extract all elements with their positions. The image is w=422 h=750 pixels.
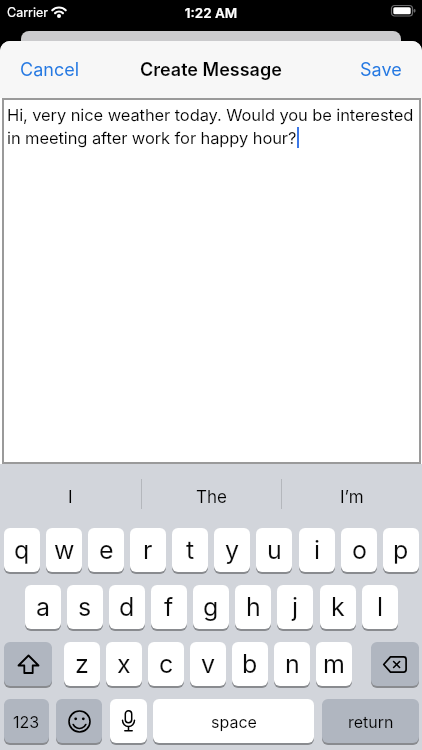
button[interactable]: Cancel [8,51,92,89]
button[interactable]: Hi, very nice weather today. Would you b… [2,98,421,464]
button[interactable]: return [322,699,419,743]
button[interactable]: e [88,528,124,572]
button[interactable]: o [341,528,377,572]
button[interactable]: The [141,473,281,522]
button[interactable]: b [232,642,268,686]
staticText: 1:22 AM [0,5,422,21]
button[interactable]: I’m [281,473,422,522]
staticText: h [246,592,261,622]
staticText: The [196,487,227,508]
button[interactable]: I [0,473,141,522]
button[interactable]: s [67,585,103,629]
button[interactable]: p [383,528,419,572]
staticText: Save [360,59,402,81]
button[interactable]: t [172,528,208,572]
staticText: d [119,592,135,622]
button[interactable]: v [190,642,226,686]
button[interactable]: l [362,585,398,629]
button[interactable]: 123 [4,699,49,743]
staticText: I [68,487,73,508]
staticText: y [225,535,240,565]
staticText: q [14,535,30,565]
staticText: s [78,592,92,622]
staticText: z [75,649,89,679]
staticText: k [331,592,345,622]
staticText: I’m [340,487,364,508]
button[interactable]: x [106,642,142,686]
staticText: n [285,649,300,679]
staticText: in meeting after work for happy hour? [7,128,297,148]
staticText: l [377,592,384,622]
staticText: x [117,649,131,679]
button[interactable]: r [130,528,166,572]
button[interactable]: q [4,528,40,572]
button[interactable]: c [148,642,184,686]
staticText: return [348,712,394,731]
staticText: p [393,535,409,565]
button[interactable]: w [46,528,82,572]
staticText: m [323,649,345,679]
button[interactable]: h [235,585,271,629]
staticText: Carrier [7,5,48,20]
staticText: b [242,649,258,679]
button[interactable]: m [316,642,352,686]
staticText: w [54,535,75,565]
button[interactable]: space [153,699,314,743]
button[interactable]: j [277,585,313,629]
button[interactable]: f [151,585,187,629]
staticText: Create Message [140,59,282,81]
staticText: c [159,649,174,679]
staticText: v [201,649,216,679]
button[interactable] [371,642,419,686]
staticText: j [292,592,299,622]
button[interactable] [4,642,52,686]
staticText: 123 [13,712,40,731]
button[interactable] [56,699,102,743]
button[interactable]: d [109,585,145,629]
staticText: e [99,535,114,565]
staticText: Cancel [20,59,80,81]
button[interactable]: y [214,528,250,572]
staticText: t [186,535,195,565]
button[interactable]: a [25,585,61,629]
button[interactable]: z [64,642,100,686]
button[interactable]: n [274,642,310,686]
button[interactable]: k [320,585,356,629]
button[interactable]: g [193,585,229,629]
button[interactable]: i [299,528,335,572]
staticText: Hi, very nice weather today. Would you b… [7,105,414,125]
staticText: i [314,535,321,565]
staticText: o [352,535,367,565]
staticText: u [267,535,282,565]
staticText: a [36,592,51,622]
staticText: space [211,712,257,731]
button[interactable] [110,699,147,743]
staticText: f [164,592,174,622]
button[interactable]: Save [348,51,414,89]
button[interactable]: u [256,528,292,572]
staticText: r [143,535,153,565]
staticText: g [203,592,219,622]
